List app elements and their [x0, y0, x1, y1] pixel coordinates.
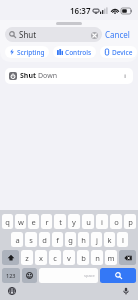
button[interactable]: space	[39, 268, 98, 283]
button[interactable]: l	[117, 232, 128, 247]
staticText: Cancel	[105, 29, 130, 40]
staticText: 16:37	[70, 5, 91, 16]
button[interactable]: r	[41, 214, 52, 229]
button[interactable]: s	[25, 232, 37, 247]
button[interactable]: Dictation	[120, 285, 132, 297]
staticText: v	[67, 253, 71, 263]
staticText: e	[31, 217, 36, 227]
button[interactable]: Shift	[2, 250, 19, 265]
staticText: o	[114, 217, 119, 227]
staticText: i	[101, 217, 103, 227]
button[interactable]: i	[96, 214, 108, 229]
button[interactable]: a	[11, 232, 23, 247]
staticText: u	[86, 217, 91, 227]
button[interactable]: c	[49, 250, 61, 265]
staticText: c	[53, 253, 57, 263]
button[interactable]: p	[124, 214, 136, 229]
button[interactable]: b	[77, 250, 89, 265]
button[interactable]: 123	[2, 268, 20, 283]
button[interactable]: Shut	[5, 68, 133, 84]
staticText: b	[81, 253, 86, 263]
button[interactable]: w	[15, 214, 26, 229]
button[interactable]: Change keyboard	[6, 285, 18, 297]
staticText: m	[107, 253, 115, 263]
button[interactable]: Scripting	[5, 46, 49, 58]
staticText: p	[128, 217, 133, 227]
staticText: i	[124, 72, 126, 80]
button[interactable]: Device	[100, 46, 137, 58]
staticText: Device	[112, 48, 133, 57]
button[interactable]: x	[35, 250, 47, 265]
button[interactable]: o	[110, 214, 122, 229]
button[interactable]: Shut	[5, 27, 102, 42]
button[interactable]: f	[52, 232, 63, 247]
staticText: q	[5, 217, 10, 227]
button[interactable]: Controls	[53, 46, 96, 58]
button[interactable]: n	[91, 250, 103, 265]
button[interactable]: q	[2, 214, 13, 229]
button[interactable]: Clear text	[90, 31, 98, 39]
staticText: space	[84, 273, 95, 278]
staticText: Scripting	[17, 48, 45, 57]
button[interactable]: u	[82, 214, 94, 229]
staticText: s	[29, 235, 33, 245]
staticText: x	[39, 253, 43, 263]
staticText: f	[56, 235, 59, 245]
staticText: d	[42, 235, 47, 245]
staticText: l	[122, 235, 124, 245]
button[interactable]: Emoji	[22, 268, 37, 283]
button[interactable]: h	[78, 232, 89, 247]
staticText: 123	[6, 272, 16, 279]
button[interactable]: m	[105, 250, 117, 265]
button[interactable]: y	[68, 214, 80, 229]
staticText: k	[107, 235, 112, 245]
button[interactable]: j	[91, 232, 102, 247]
button[interactable]: g	[65, 232, 76, 247]
staticText: h	[81, 235, 86, 245]
button[interactable]: k	[104, 232, 115, 247]
staticText: z	[25, 253, 29, 263]
button[interactable]: z	[21, 250, 33, 265]
button[interactable]: t	[54, 214, 66, 229]
staticText: a	[15, 235, 20, 245]
button[interactable]: d	[39, 232, 50, 247]
staticText: y	[72, 217, 76, 227]
staticText: w	[18, 217, 24, 227]
button[interactable]: Search	[100, 268, 136, 283]
button[interactable]: Cancel	[102, 27, 133, 42]
button[interactable]: e	[28, 214, 39, 229]
button[interactable]: Info	[121, 72, 129, 80]
staticText: Down	[38, 71, 58, 81]
staticText: g	[68, 235, 73, 245]
button[interactable]: v	[63, 250, 75, 265]
button[interactable]: Delete	[119, 250, 136, 265]
staticText: r	[45, 217, 49, 227]
staticText: Controls	[65, 48, 92, 57]
staticText: j	[96, 235, 98, 245]
staticText: Shut	[20, 71, 36, 81]
staticText: n	[95, 253, 100, 263]
staticText: t	[59, 217, 62, 227]
staticText: Shut	[19, 29, 37, 40]
